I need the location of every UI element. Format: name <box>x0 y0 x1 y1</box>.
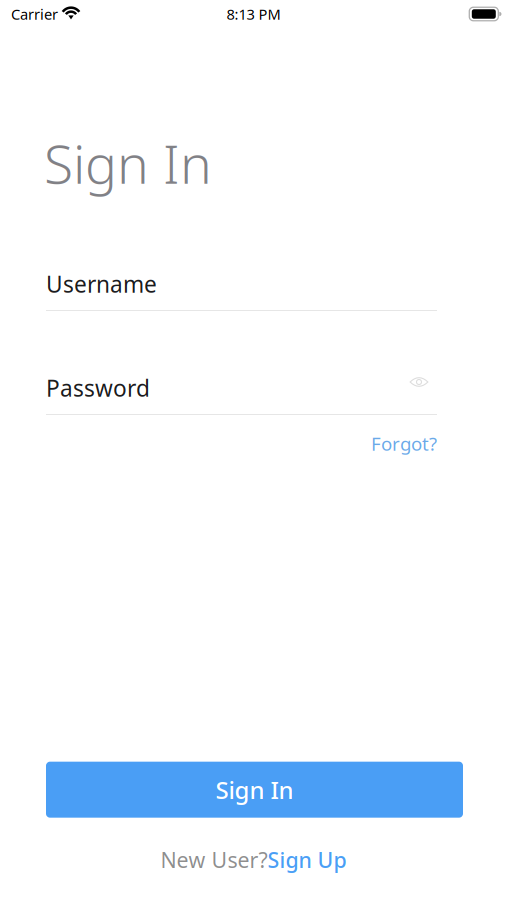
staticText: New User? <box>160 846 267 874</box>
button[interactable]: Sign In <box>46 762 463 818</box>
button[interactable]: Username <box>46 272 437 311</box>
button[interactable]: Show password <box>409 376 437 400</box>
staticText: Username <box>46 269 157 299</box>
staticText: 8:13 PM <box>226 4 280 24</box>
button[interactable]: Forgot? <box>371 431 437 456</box>
staticText: Carrier <box>11 4 58 24</box>
button[interactable]: Sign Up <box>267 846 346 874</box>
staticText: Sign In <box>44 128 212 198</box>
staticText: Password <box>46 373 150 403</box>
staticText: Sign Up <box>267 846 346 874</box>
staticText: Forgot? <box>371 431 437 456</box>
staticText: Sign In <box>215 774 293 806</box>
